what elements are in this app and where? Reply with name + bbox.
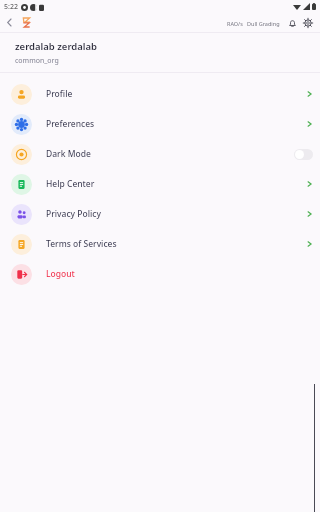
button[interactable]: Privacy Policy (0, 199, 320, 229)
button[interactable]: Dark Mode (0, 139, 320, 169)
button[interactable]: Logout (0, 259, 320, 289)
staticText: zerdalab zerdalab (15, 40, 98, 53)
staticText: Dark Mode (46, 148, 91, 160)
staticText: Preferences (46, 118, 95, 130)
staticText: common_org (15, 56, 59, 66)
staticText: Terms of Services (46, 238, 117, 250)
button[interactable]: Settings (301, 16, 315, 30)
staticText: Profile (46, 88, 73, 100)
button[interactable]: RAO/s (227, 20, 243, 27)
button[interactable]: Dull Grading (247, 20, 280, 27)
staticText: Help Center (46, 178, 95, 190)
button[interactable]: Dark Mode toggle (294, 149, 313, 160)
button[interactable]: Notifications (285, 16, 299, 30)
button[interactable]: Back (0, 13, 18, 32)
staticText: Privacy Policy (46, 208, 101, 220)
button[interactable]: Terms of Services (0, 229, 320, 259)
button[interactable] (18, 13, 34, 32)
button[interactable]: Preferences (0, 109, 320, 139)
button[interactable]: Profile (0, 79, 320, 109)
button[interactable]: Help Center (0, 169, 320, 199)
staticText: 5:22 (4, 2, 18, 12)
staticText: Logout (46, 268, 75, 280)
